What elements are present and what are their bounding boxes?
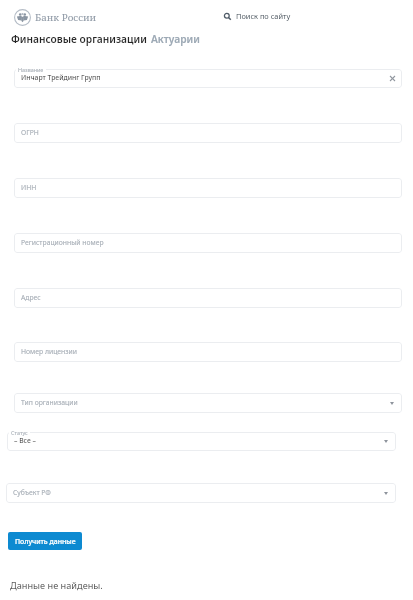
button[interactable]: ИНН	[14, 178, 402, 198]
staticText: Актуарии	[151, 32, 200, 46]
button[interactable]: Адрес	[14, 288, 402, 308]
button[interactable]: Номер лицензии	[14, 342, 402, 362]
other: Clear Название	[390, 76, 395, 81]
staticText: Получить данные	[15, 537, 76, 546]
staticText: Субъект РФ	[13, 488, 51, 497]
button[interactable]: Инчарт Трейдинг Групп	[14, 69, 402, 88]
staticText: Финансовые организации	[11, 32, 147, 46]
staticText: Статус	[11, 429, 28, 436]
staticText: Поиск по сайту	[236, 11, 291, 21]
button[interactable]: Регистрационный номер	[14, 233, 402, 253]
staticText: Инчарт Трейдинг Групп	[21, 73, 101, 82]
staticText: Адрес	[21, 293, 41, 302]
other: Search	[224, 13, 231, 20]
button[interactable]: Актуарии	[151, 30, 200, 48]
other: Open Субъект РФ dropdown	[384, 492, 388, 495]
staticText: Тип организации	[21, 398, 78, 407]
staticText: Номер лицензии	[21, 347, 77, 356]
staticText: ИНН	[21, 183, 37, 192]
staticText: Данные не найдены.	[10, 579, 103, 592]
staticText: Название	[18, 66, 44, 73]
staticText: Банк России	[35, 11, 97, 24]
other: Open Статус dropdown	[384, 440, 388, 443]
button[interactable]: Финансовые организации	[11, 30, 147, 48]
button[interactable]: Получить данные	[8, 532, 82, 550]
staticText: ОГРН	[21, 128, 39, 137]
button[interactable]: ОГРН	[14, 123, 402, 143]
button[interactable]: Search	[224, 11, 291, 21]
staticText: Регистрационный номер	[21, 238, 104, 247]
other: Open Тип организации dropdown	[390, 402, 394, 405]
button[interactable]: Субъект РФ	[6, 483, 396, 503]
button[interactable]: Тип организации	[14, 393, 402, 413]
staticText: – Все –	[14, 436, 36, 445]
button[interactable]: – Все –	[7, 432, 396, 451]
button[interactable]: Банк России	[14, 9, 97, 26]
